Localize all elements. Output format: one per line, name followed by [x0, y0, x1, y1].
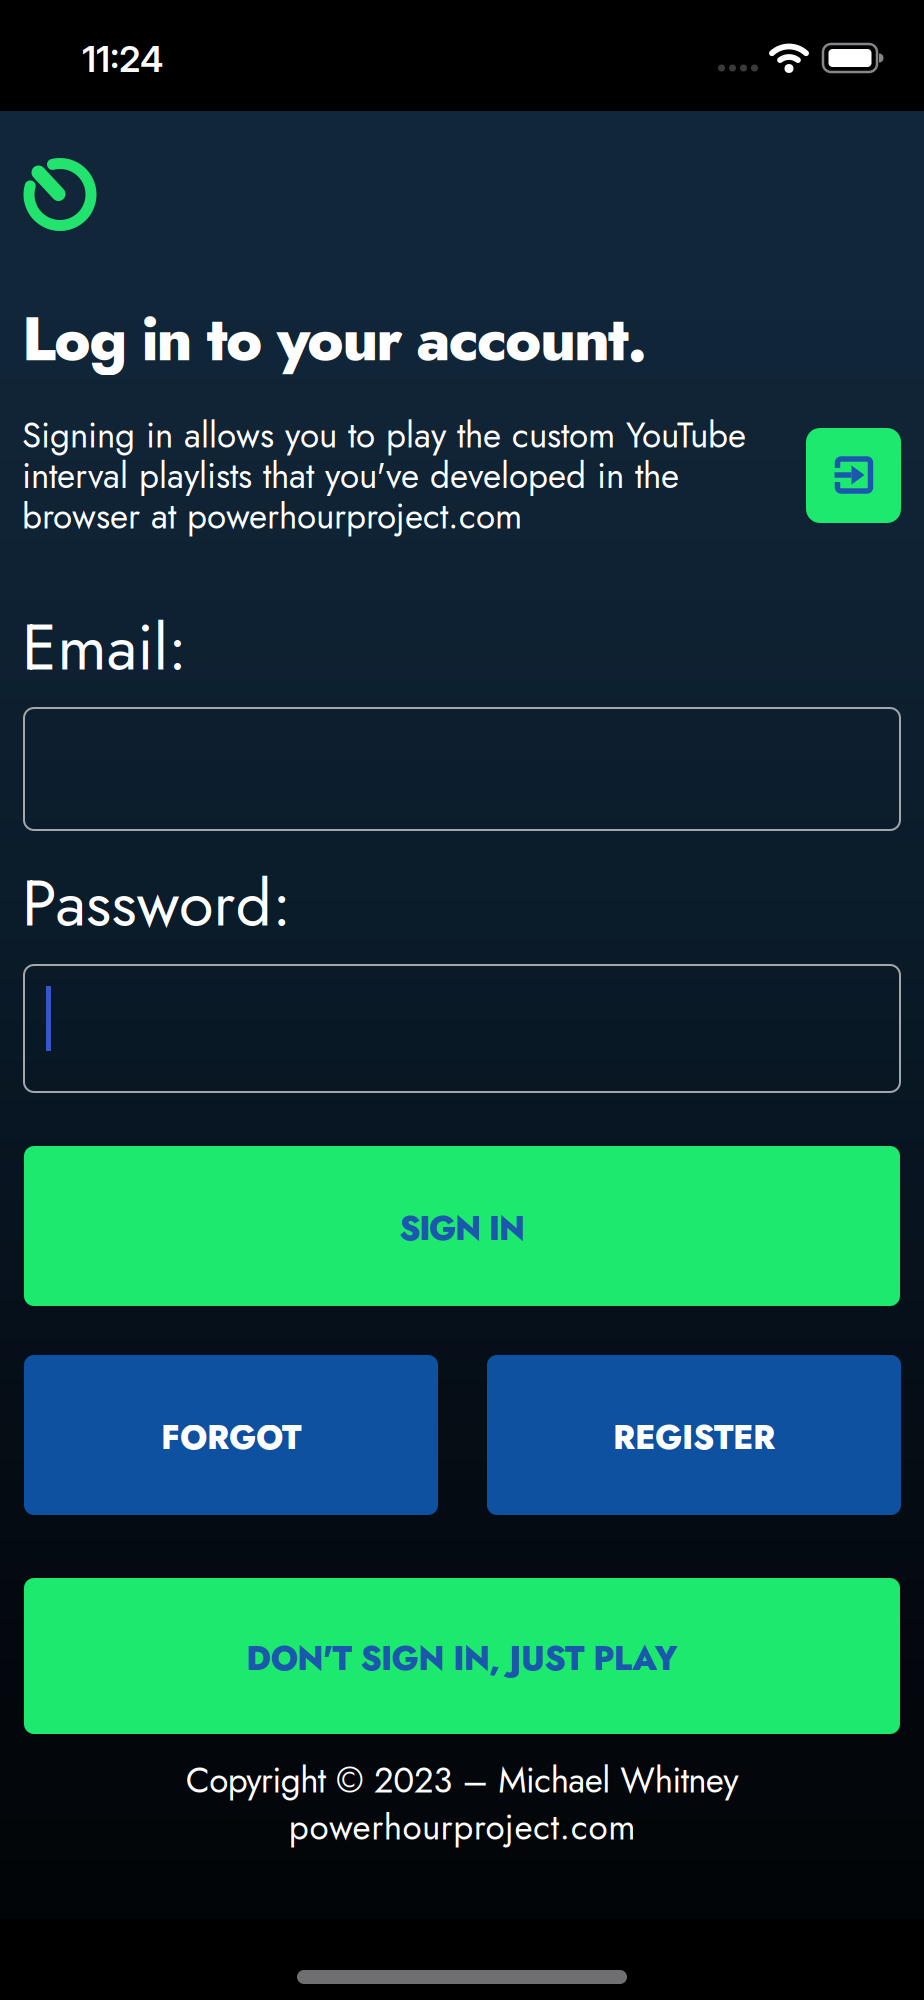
staticText: powerhourproject.com: [289, 1802, 635, 1853]
staticText: Log in to your account.: [22, 295, 647, 383]
button[interactable]: [24, 965, 900, 1092]
staticText: Signing in allows you to play the custom…: [22, 410, 746, 461]
staticText: interval playlists that you've developed…: [22, 451, 679, 501]
button[interactable]: [806, 428, 901, 523]
staticText: DON'T SIGN IN, JUST PLAY: [246, 1635, 678, 1682]
button[interactable]: REGISTER: [487, 1355, 901, 1515]
staticText: Email:: [22, 602, 187, 693]
staticText: FORGOT: [161, 1414, 301, 1461]
button[interactable]: FORGOT: [24, 1355, 438, 1515]
staticText: Password:: [22, 858, 291, 949]
button[interactable]: DON'T SIGN IN, JUST PLAY: [24, 1578, 900, 1734]
button[interactable]: SIGN IN: [24, 1146, 900, 1306]
button[interactable]: [24, 708, 900, 830]
staticText: 11:24: [82, 37, 163, 81]
staticText: REGISTER: [613, 1414, 775, 1461]
staticText: browser at powerhourproject.com: [22, 491, 522, 542]
staticText: Copyright © 2023 – Michael Whitney: [186, 1755, 738, 1806]
staticText: SIGN IN: [399, 1205, 525, 1252]
